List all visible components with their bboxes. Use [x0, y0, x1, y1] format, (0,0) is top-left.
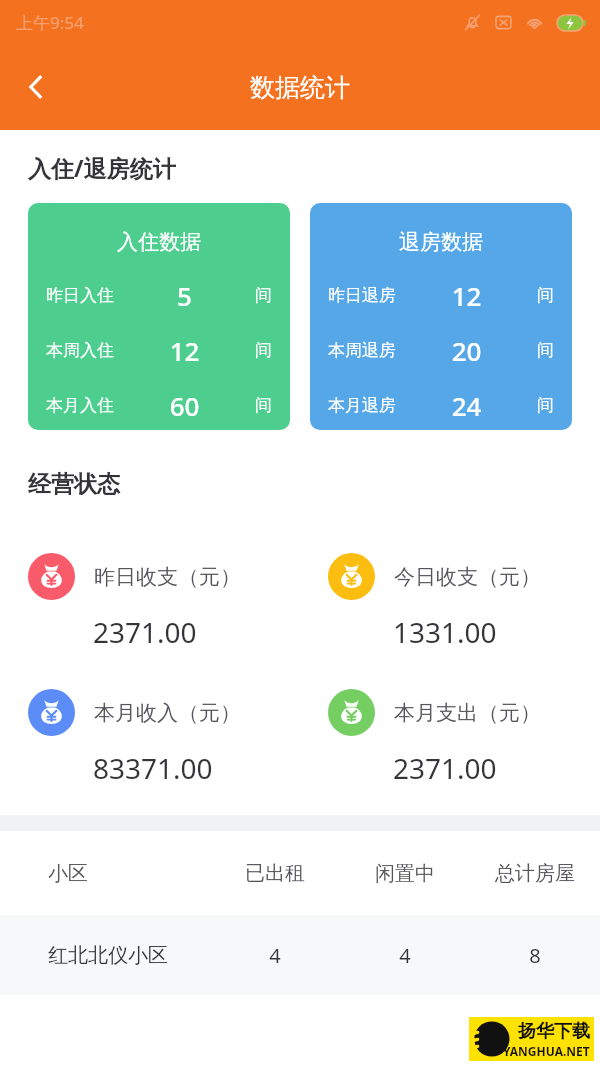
staticText: 昨日入住	[46, 285, 114, 306]
staticText: 60	[114, 388, 255, 423]
staticText: 4	[210, 942, 340, 969]
staticText: 已出租	[210, 861, 340, 886]
button[interactable]: 红北北仪小区	[0, 915, 600, 995]
staticText: 间	[255, 395, 272, 416]
staticText: 4	[340, 942, 470, 969]
staticText: 本月收入（元）	[94, 700, 241, 726]
staticText: 上午9:54	[16, 11, 84, 34]
staticText: 20	[396, 333, 537, 368]
button[interactable]: 退房数据	[310, 203, 572, 430]
staticText: 今日收支（元）	[394, 564, 541, 590]
staticText: 入住/退房统计	[28, 152, 176, 183]
staticText: 间	[537, 340, 554, 361]
staticText: 12	[396, 278, 537, 313]
staticText: 经营状态	[28, 470, 120, 499]
staticText: 闲置中	[340, 861, 470, 886]
staticText: 昨日收支（元）	[94, 564, 241, 590]
staticText: 2371.00	[93, 613, 197, 651]
staticText: 红北北仪小区	[48, 943, 210, 968]
staticText: 5	[114, 278, 255, 313]
staticText: 入住数据	[46, 229, 272, 255]
staticText: 扬华下载	[518, 1020, 590, 1043]
staticText: 本月退房	[328, 395, 396, 416]
staticText: 本月入住	[46, 395, 114, 416]
button[interactable]: 本月支出（元）	[328, 689, 600, 787]
staticText: 83371.00	[93, 749, 213, 787]
button[interactable]: 昨日收支（元）	[28, 553, 300, 651]
staticText: 本周退房	[328, 340, 396, 361]
staticText: 退房数据	[328, 229, 554, 255]
staticText: 数据统计	[250, 72, 350, 103]
staticText: 间	[255, 285, 272, 306]
staticText: 间	[537, 285, 554, 306]
button[interactable]: 小区	[0, 831, 600, 915]
button[interactable]: 本月收入（元）	[28, 689, 300, 787]
staticText: 昨日退房	[328, 285, 396, 306]
button[interactable]: 返回	[8, 59, 64, 115]
staticText: 1331.00	[393, 613, 497, 651]
staticText: 间	[255, 340, 272, 361]
staticText: 12	[114, 333, 255, 368]
staticText: 本周入住	[46, 340, 114, 361]
staticText: 本月支出（元）	[394, 700, 541, 726]
staticText: 总计房屋	[470, 861, 600, 886]
staticText: 间	[537, 395, 554, 416]
staticText: 2371.00	[393, 749, 497, 787]
button[interactable]: 今日收支（元）	[328, 553, 600, 651]
staticText: 8	[470, 942, 600, 969]
staticText: 小区	[48, 861, 210, 886]
staticText: 24	[396, 388, 537, 423]
staticText: YANGHUA.NET	[503, 1043, 590, 1059]
button[interactable]: 入住数据	[28, 203, 290, 430]
